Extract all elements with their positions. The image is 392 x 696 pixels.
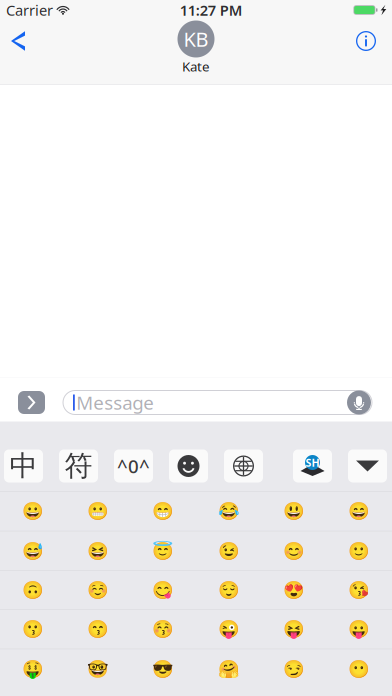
staticText: 中 <box>9 449 37 483</box>
staticText: KB <box>183 26 208 52</box>
button[interactable]: 😋 <box>131 571 196 609</box>
staticText: 😅 <box>22 541 44 561</box>
staticText: 😋 <box>152 580 174 600</box>
staticText: 😉 <box>218 541 240 561</box>
button[interactable]: 😀 <box>0 492 65 531</box>
staticText: SH <box>305 455 319 470</box>
button[interactable]: Details <box>346 20 386 62</box>
staticText: 11:27 PM <box>180 0 243 20</box>
button[interactable]: 😉 <box>196 531 261 570</box>
staticText: 😛 <box>348 619 370 639</box>
button[interactable]: Chinese input <box>4 449 43 482</box>
button[interactable]: 🤗 <box>196 649 261 688</box>
button[interactable]: Record audio <box>347 390 371 414</box>
button[interactable]: 🤓 <box>65 649 131 688</box>
staticText: 🙂 <box>348 541 370 561</box>
staticText: 🤑 <box>22 659 44 678</box>
staticText: 😃 <box>283 501 305 521</box>
staticText: Kate <box>182 57 210 75</box>
staticText: 😏 <box>283 659 305 678</box>
staticText: ☺️ <box>87 580 109 600</box>
staticText: 😝 <box>283 619 305 639</box>
button[interactable]: 😊 <box>261 531 327 570</box>
staticText: 😗 <box>22 619 44 639</box>
staticText: 😆 <box>87 541 109 561</box>
staticText: 😙 <box>87 619 109 639</box>
staticText: 😘 <box>348 580 370 600</box>
button[interactable]: 😘 <box>327 571 392 609</box>
button[interactable]: 😁 <box>131 492 196 531</box>
button[interactable]: Emoji <box>169 449 208 482</box>
staticText: 😎 <box>152 659 174 678</box>
button[interactable]: 😝 <box>261 610 327 649</box>
staticText: 😬 <box>87 501 109 521</box>
staticText: 😜 <box>218 619 240 639</box>
staticText: 😂 <box>218 501 240 521</box>
staticText: 🙃 <box>22 580 44 600</box>
button[interactable]: 😎 <box>131 649 196 688</box>
button[interactable]: Dictionary <box>293 449 332 482</box>
staticText: 🤗 <box>218 659 240 678</box>
staticText: 😀 <box>22 501 44 521</box>
staticText: 😊 <box>283 541 305 561</box>
button[interactable]: 🤑 <box>0 649 65 688</box>
button[interactable]: 😌 <box>196 571 261 609</box>
button[interactable]: KB <box>177 20 214 75</box>
button[interactable]: 😃 <box>261 492 327 531</box>
button[interactable]: Back <box>0 20 36 62</box>
staticText: Message <box>76 390 154 415</box>
button[interactable]: 😶 <box>327 649 392 688</box>
button[interactable]: 😬 <box>65 492 131 531</box>
button[interactable]: 😏 <box>261 649 327 688</box>
button[interactable]: 😜 <box>196 610 261 649</box>
staticText: 😄 <box>348 501 370 521</box>
button[interactable]: ☺️ <box>65 571 131 609</box>
button[interactable]: 😚 <box>131 610 196 649</box>
button[interactable]: Hide keyboard <box>348 449 387 482</box>
button[interactable]: 🙂 <box>327 531 392 570</box>
button[interactable]: 😄 <box>327 492 392 531</box>
button[interactable]: More options <box>18 391 45 414</box>
staticText: 😍 <box>283 580 305 600</box>
button[interactable]: 😂 <box>196 492 261 531</box>
button[interactable]: 🙃 <box>0 571 65 609</box>
button[interactable]: 😅 <box>0 531 65 570</box>
staticText: 😌 <box>218 580 240 600</box>
button[interactable]: 😛 <box>327 610 392 649</box>
button[interactable]: 😇 <box>131 531 196 570</box>
button[interactable]: Switch keyboard <box>224 449 263 482</box>
button[interactable]: 😗 <box>0 610 65 649</box>
staticText: 😚 <box>152 619 174 639</box>
staticText: 😇 <box>152 541 174 561</box>
staticText: 😶 <box>348 659 370 678</box>
button[interactable]: Kaomoji <box>114 449 153 482</box>
staticText: 🤓 <box>87 659 109 678</box>
button[interactable]: 😙 <box>65 610 131 649</box>
staticText: ^0^ <box>117 454 150 478</box>
button[interactable]: 😆 <box>65 531 131 570</box>
button[interactable]: 😍 <box>261 571 327 609</box>
staticText: 😁 <box>152 501 174 521</box>
button[interactable]: Symbols <box>59 449 98 482</box>
staticText: 符 <box>64 449 92 483</box>
staticText: Carrier <box>6 0 53 20</box>
